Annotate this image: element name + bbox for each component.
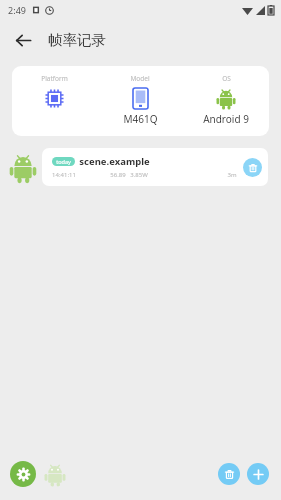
staticText: today [56, 158, 71, 165]
button[interactable]: Settings [10, 461, 36, 487]
staticText: M461Q [123, 112, 158, 126]
button[interactable]: Delete all [218, 463, 240, 485]
button[interactable]: Delete record [243, 158, 262, 177]
button[interactable]: Add record [247, 463, 269, 485]
staticText: 3.85W [130, 171, 148, 179]
staticText: 14:41:11 [52, 171, 76, 179]
staticText: OS [222, 74, 231, 83]
staticText: 3m [227, 171, 237, 179]
staticText: 帧率记录 [48, 31, 106, 49]
staticText: scene.example [79, 155, 150, 168]
staticText: Android 9 [203, 112, 249, 126]
button[interactable]: App picker [42, 461, 68, 487]
staticText: 2:49 [8, 4, 26, 16]
staticText: Model [130, 74, 150, 83]
button[interactable]: today [42, 148, 268, 186]
button[interactable]: Back [6, 23, 40, 57]
staticText: Platform [41, 74, 68, 83]
staticText: 56.89 [110, 171, 126, 179]
